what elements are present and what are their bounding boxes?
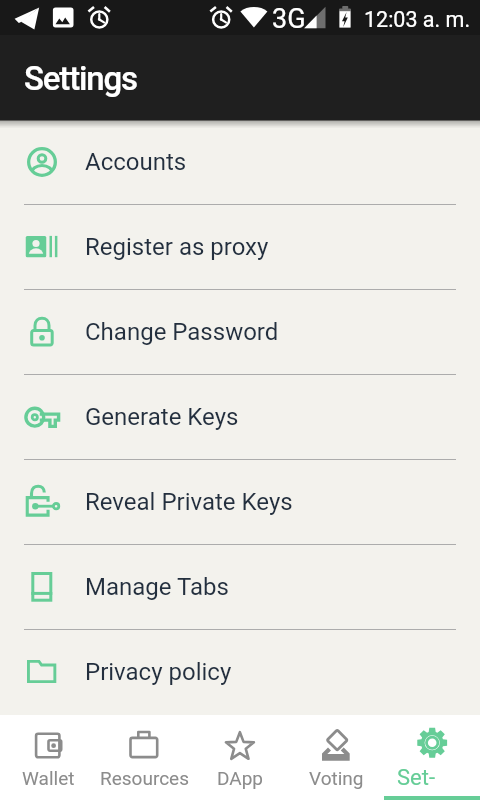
button[interactable]: Generate Keys xyxy=(0,375,480,459)
staticText: Register as proxy xyxy=(85,233,269,261)
staticText: Accounts xyxy=(85,148,187,176)
button[interactable]: DApp xyxy=(192,715,288,800)
staticText: Manage Tabs xyxy=(85,573,229,601)
staticText: 3G xyxy=(272,3,306,35)
staticText: DApp xyxy=(217,767,264,789)
button[interactable]: Settings xyxy=(384,715,480,800)
staticText: Settings xyxy=(24,59,137,98)
button[interactable]: Voting xyxy=(288,715,384,800)
button[interactable]: Change Password xyxy=(0,290,480,374)
staticText: Change Password xyxy=(85,318,279,346)
button[interactable]: Reveal Private Keys xyxy=(0,460,480,544)
staticText: Resources xyxy=(100,767,189,789)
staticText: 12:03 a. m. xyxy=(364,7,471,32)
button[interactable]: Privacy policy xyxy=(0,630,480,714)
button[interactable]: Accounts xyxy=(0,120,480,204)
button[interactable]: Resources xyxy=(96,715,192,800)
button[interactable]: Manage Tabs xyxy=(0,545,480,629)
button[interactable]: Register as proxy xyxy=(0,205,480,289)
staticText: Set- xyxy=(397,765,436,791)
staticText: Wallet xyxy=(22,767,75,789)
staticText: Reveal Private Keys xyxy=(85,488,293,516)
staticText: Generate Keys xyxy=(85,403,239,431)
button[interactable]: Wallet xyxy=(0,715,96,800)
staticText: Voting xyxy=(309,767,364,789)
staticText: Privacy policy xyxy=(85,658,232,686)
